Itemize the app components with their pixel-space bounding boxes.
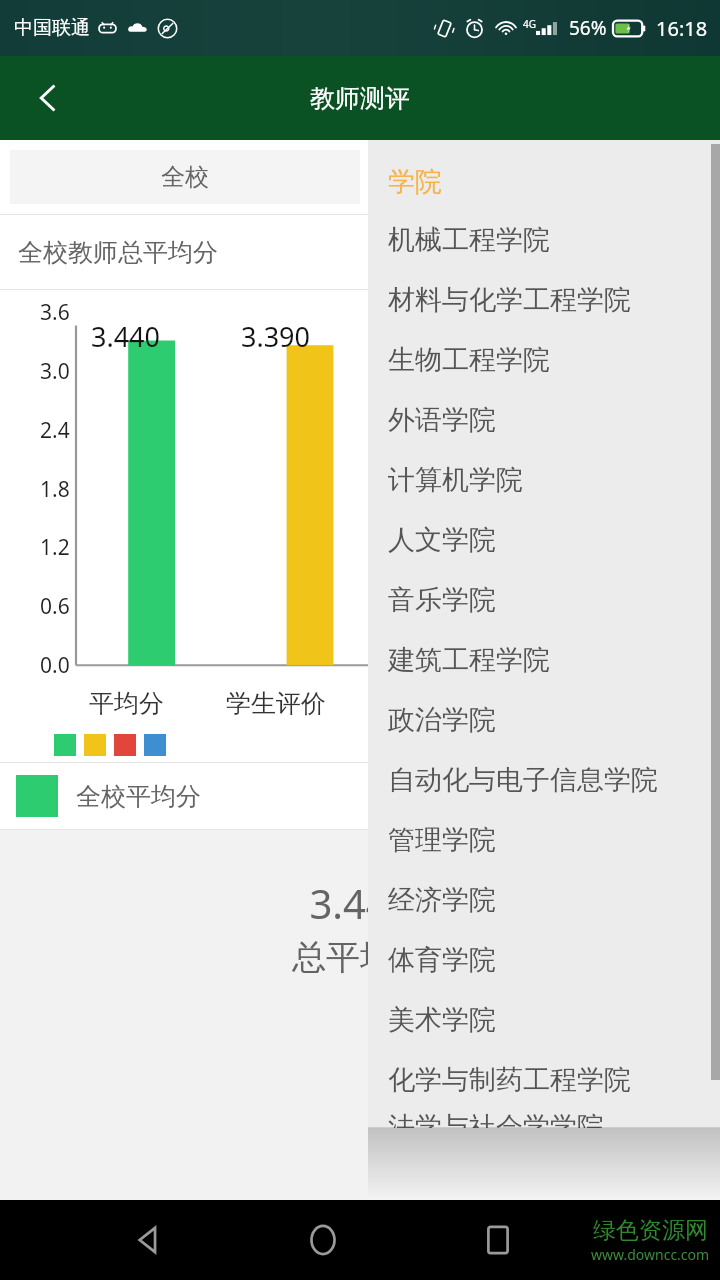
staticText: 0.0 (40, 651, 70, 680)
staticText: 人文学院 (388, 523, 496, 557)
button[interactable]: 全校 (10, 150, 360, 204)
button[interactable]: 政治学院 (368, 690, 720, 750)
staticText: 生物工程学院 (388, 343, 550, 377)
button[interactable]: 体育学院 (368, 930, 720, 990)
staticText: 3.6 (40, 298, 70, 327)
button[interactable]: 自动化与电子信息学院 (368, 750, 720, 810)
staticText: 16:18 (656, 15, 708, 42)
button[interactable]: 外语学院 (368, 390, 720, 450)
staticText: 3.440 (91, 318, 161, 355)
staticText: 1.2 (40, 533, 70, 562)
staticText: 外语学院 (388, 403, 496, 437)
staticText: 0.6 (40, 592, 70, 621)
staticText: 2.4 (40, 416, 70, 445)
staticText: 管理学院 (388, 823, 496, 857)
button[interactable]: 计算机学院 (368, 450, 720, 510)
button[interactable]: 管理学院 (368, 810, 720, 870)
staticText: 教师测评 (310, 83, 410, 114)
staticText: 政治学院 (388, 703, 496, 737)
staticText: 平均分 (89, 688, 164, 719)
button[interactable]: 美术学院 (368, 990, 720, 1050)
staticText: 3.0 (40, 357, 70, 386)
button[interactable]: 建筑工程学院 (368, 630, 720, 690)
staticText: 全校 (161, 162, 209, 192)
staticText: 材料与化学工程学院 (388, 283, 631, 317)
staticText: www.downcc.com (591, 1245, 710, 1264)
staticText: 音乐学院 (388, 583, 496, 617)
button[interactable]: Recents (462, 1204, 534, 1276)
button[interactable]: 生物工程学院 (368, 330, 720, 390)
staticText: 56% (569, 15, 607, 41)
staticText: 化学与制药工程学院 (388, 1063, 631, 1097)
staticText: 全校教师总平均分 (18, 237, 218, 268)
staticText: 3.440 (309, 876, 412, 930)
button[interactable]: 化学与制药工程学院 (368, 1050, 720, 1110)
staticText: 4G (523, 17, 536, 31)
button[interactable]: 法学与社会学学院 (368, 1110, 720, 1128)
staticText: 总平均分 (292, 936, 428, 979)
button[interactable]: 材料与化学工程学院 (368, 270, 720, 330)
button[interactable]: 经济学院 (368, 870, 720, 930)
button[interactable]: Back (112, 1204, 184, 1276)
staticText: 中国联通 (14, 16, 90, 40)
button[interactable]: 音乐学院 (368, 570, 720, 630)
staticText: 3.390 (241, 318, 311, 355)
button[interactable]: 人文学院 (368, 510, 720, 570)
staticText: 建筑工程学院 (388, 643, 550, 677)
staticText: 自动化与电子信息学院 (388, 763, 658, 797)
staticText: 体育学院 (388, 943, 496, 977)
staticText: 绿色资源网 (593, 1216, 708, 1245)
staticText: 经济学院 (388, 883, 496, 917)
staticText: 学院 (388, 165, 442, 199)
button[interactable]: Home (287, 1204, 359, 1276)
staticText: 法学与社会学学院 (388, 1110, 604, 1128)
staticText: 学生评价 (226, 688, 326, 719)
button[interactable]: 学院 (368, 154, 720, 210)
button[interactable]: 机械工程学院 (368, 210, 720, 270)
staticText: 计算机学院 (388, 463, 523, 497)
staticText: 机械工程学院 (388, 223, 550, 257)
staticText: 全校平均分 (76, 781, 201, 812)
staticText: 1.8 (40, 475, 70, 504)
button[interactable]: Back (0, 56, 96, 140)
staticText: 美术学院 (388, 1003, 496, 1037)
